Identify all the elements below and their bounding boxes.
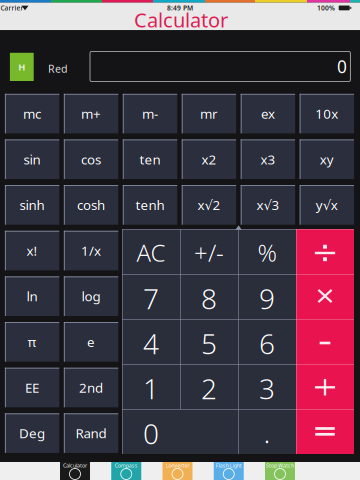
staticText: Calculator: [63, 462, 87, 469]
button[interactable]: xy: [300, 139, 354, 179]
button[interactable]: m-: [123, 94, 177, 133]
button[interactable]: AC: [122, 229, 180, 274]
staticText: Carrier: [0, 3, 23, 12]
staticText: mr: [200, 105, 218, 122]
staticText: e: [87, 333, 95, 351]
button[interactable]: mr: [182, 94, 236, 133]
button[interactable]: 2: [180, 364, 238, 409]
button[interactable]: sin: [5, 139, 59, 179]
staticText: m-: [142, 105, 158, 122]
staticText: x√2: [197, 196, 220, 214]
staticText: ln: [27, 287, 38, 305]
staticText: Rand: [75, 424, 106, 442]
staticText: Stop Watch: [266, 462, 294, 469]
button[interactable]: Rand: [64, 413, 118, 453]
button[interactable]: cos: [64, 139, 118, 179]
button[interactable]: EE: [5, 368, 59, 407]
button[interactable]: log: [64, 276, 118, 316]
staticText: Deg: [19, 424, 45, 442]
button[interactable]: 1/x: [64, 231, 118, 270]
button[interactable]: Flash Light: [214, 462, 244, 480]
staticText: x2: [201, 150, 216, 168]
button[interactable]: 6: [238, 319, 296, 364]
staticText: xy: [320, 150, 334, 168]
staticText: EE: [25, 379, 39, 396]
staticText: H: [18, 61, 25, 73]
staticText: 2: [201, 370, 217, 407]
button[interactable]: 7: [122, 274, 180, 319]
staticText: .: [263, 414, 270, 451]
staticText: m+: [81, 105, 101, 122]
staticText: mc: [23, 105, 41, 122]
button[interactable]: m+: [64, 94, 118, 133]
button[interactable]: Converter: [162, 462, 192, 480]
staticText: 0: [143, 415, 159, 452]
staticText: Flash Light: [216, 462, 242, 469]
button[interactable]: Compass: [111, 462, 141, 480]
staticText: x√3: [256, 196, 279, 214]
staticText: cos: [81, 150, 101, 168]
button[interactable]: 8: [180, 274, 238, 319]
button[interactable]: H: [10, 53, 34, 81]
staticText: 8:49 PM: [167, 3, 193, 12]
staticText: ten: [139, 150, 160, 168]
staticText: x3: [260, 150, 275, 168]
button[interactable]: mc: [5, 94, 59, 133]
button[interactable]: ten: [123, 139, 177, 179]
button[interactable]: Subtract: [296, 319, 354, 364]
button[interactable]: 1: [122, 364, 180, 409]
staticText: tenh: [135, 196, 164, 214]
button[interactable]: x√2: [182, 185, 236, 225]
staticText: sin: [24, 150, 41, 168]
button[interactable]: y√x: [300, 185, 354, 225]
button[interactable]: 0: [122, 409, 238, 454]
staticText: Calculator: [134, 6, 228, 33]
staticText: 3: [259, 370, 275, 407]
staticText: %: [257, 237, 276, 268]
button[interactable]: ex: [241, 94, 295, 133]
button[interactable]: x√3: [241, 185, 295, 225]
staticText: π: [28, 333, 37, 351]
button[interactable]: π: [5, 322, 59, 362]
staticText: 1: [143, 370, 159, 407]
button[interactable]: 10x: [300, 94, 354, 133]
button[interactable]: x!: [5, 231, 59, 270]
button[interactable]: Divide: [296, 229, 354, 274]
button[interactable]: sinh: [5, 185, 59, 225]
staticText: y√x: [316, 196, 338, 214]
staticText: 9: [259, 280, 275, 317]
staticText: Red: [48, 62, 68, 76]
button[interactable]: .: [238, 409, 296, 454]
button[interactable]: ln: [5, 276, 59, 316]
staticText: 100%: [317, 3, 335, 12]
button[interactable]: x3: [241, 139, 295, 179]
button[interactable]: Stop Watch: [265, 462, 295, 480]
button[interactable]: Equals: [296, 409, 354, 454]
button[interactable]: cosh: [64, 185, 118, 225]
staticText: Converter: [165, 462, 189, 469]
button[interactable]: e: [64, 322, 118, 362]
button[interactable]: 9: [238, 274, 296, 319]
staticText: 4: [143, 325, 159, 362]
staticText: 7: [143, 280, 159, 317]
staticText: sinh: [20, 196, 45, 214]
button[interactable]: 4: [122, 319, 180, 364]
button[interactable]: %: [238, 229, 296, 274]
staticText: x!: [27, 242, 38, 259]
button[interactable]: Add: [296, 364, 354, 409]
button[interactable]: Calculator: [60, 462, 90, 480]
button[interactable]: 3: [238, 364, 296, 409]
button[interactable]: tenh: [123, 185, 177, 225]
staticText: 6: [259, 325, 275, 362]
button[interactable]: Deg: [5, 413, 59, 453]
staticText: 2nd: [79, 379, 103, 396]
button[interactable]: 5: [180, 319, 238, 364]
button[interactable]: x2: [182, 139, 236, 179]
staticText: 0: [337, 55, 347, 78]
button[interactable]: 2nd: [64, 368, 118, 407]
staticText: Compass: [115, 462, 138, 469]
button[interactable]: Multiply: [296, 274, 354, 319]
staticText: +/-: [194, 237, 224, 268]
button[interactable]: +/-: [180, 229, 238, 274]
staticText: ex: [261, 105, 275, 122]
